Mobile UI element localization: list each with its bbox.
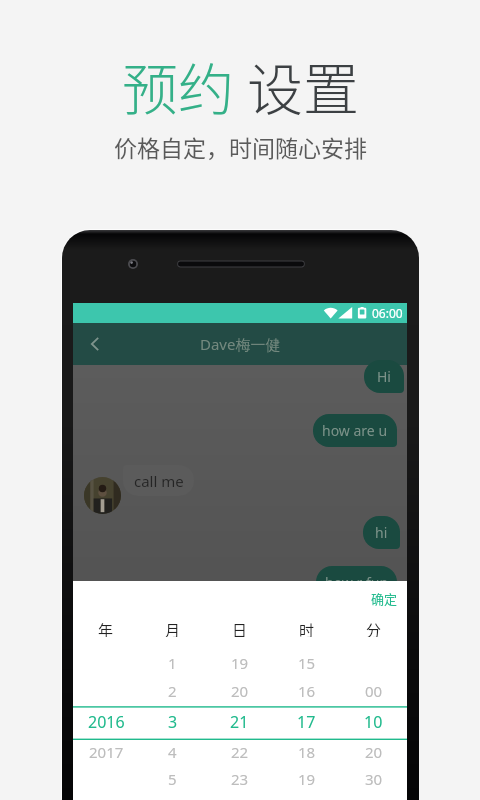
staticText: 价格自定，时间随心安排: [114, 130, 367, 163]
staticText: 3: [168, 711, 178, 733]
staticText: 00: [365, 681, 383, 701]
staticText: how r fun: [325, 573, 389, 592]
button[interactable]: Back: [79, 328, 111, 360]
staticText: 06:00: [372, 305, 403, 321]
button[interactable]: hi: [363, 516, 400, 549]
staticText: 确定: [371, 589, 398, 608]
button[interactable]: Hi: [364, 360, 404, 393]
staticText: 19: [298, 769, 316, 789]
staticText: 年: [98, 619, 114, 637]
staticText: 月: [165, 619, 181, 637]
staticText: 分: [366, 619, 382, 637]
staticText: 16: [298, 681, 316, 701]
staticText: Dave梅一健: [200, 334, 281, 354]
button[interactable]: how are u: [313, 414, 397, 447]
staticText: 15: [298, 653, 316, 673]
staticText: 19: [231, 653, 249, 673]
staticText: 23: [231, 769, 249, 789]
staticText: 时: [299, 619, 315, 637]
staticText: hi: [375, 523, 388, 542]
staticText: 预约: [122, 45, 247, 126]
staticText: 日: [232, 619, 248, 637]
staticText: 设置: [247, 45, 359, 126]
staticText: 30: [365, 769, 383, 789]
staticText: 10: [364, 711, 383, 733]
staticText: 20: [365, 742, 383, 762]
staticText: 17: [297, 711, 316, 733]
staticText: 2016: [88, 711, 125, 733]
staticText: 20: [231, 681, 249, 701]
staticText: 21: [230, 711, 249, 733]
staticText: 18: [298, 742, 316, 762]
button[interactable]: how r fun: [316, 566, 397, 599]
staticText: call me: [134, 471, 184, 491]
staticText: 2017: [89, 742, 124, 762]
staticText: Hi: [377, 367, 391, 386]
staticText: 4: [168, 742, 177, 762]
staticText: 5: [168, 769, 177, 789]
button[interactable]: call me: [123, 465, 194, 496]
staticText: 2: [168, 681, 177, 701]
staticText: 22: [231, 742, 249, 762]
staticText: 1: [168, 653, 177, 673]
button[interactable]: 确定: [357, 584, 407, 615]
staticText: how are u: [322, 421, 388, 440]
